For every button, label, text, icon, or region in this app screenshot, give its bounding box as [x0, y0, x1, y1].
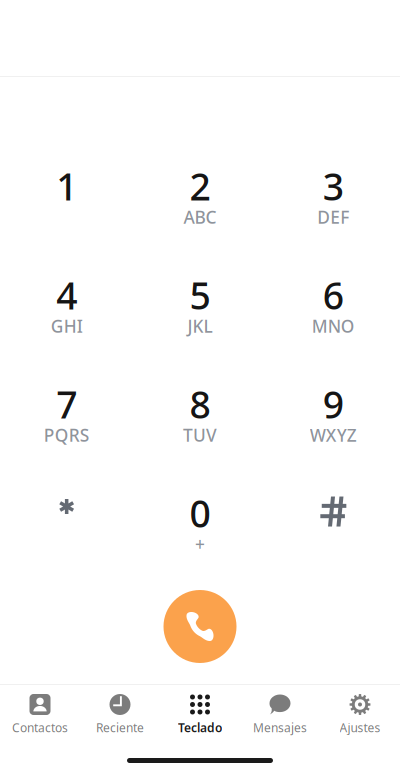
button[interactable]: Ajustes	[320, 685, 400, 738]
button[interactable]: Mensajes	[240, 685, 320, 738]
button[interactable]: Call	[163, 590, 236, 663]
button[interactable]: 2	[133, 168, 267, 224]
button[interactable]: 3	[267, 168, 400, 224]
staticText: 4	[56, 270, 77, 320]
button[interactable]: 8	[133, 386, 267, 442]
button[interactable]: star	[0, 495, 133, 551]
staticText: 6	[323, 270, 344, 320]
staticText: TUV	[183, 423, 217, 446]
staticText: Mensajes	[253, 719, 307, 735]
staticText: 0	[189, 488, 210, 538]
button[interactable]: 9	[267, 386, 400, 442]
staticText: MNO	[312, 314, 355, 337]
staticText: 5	[189, 270, 210, 320]
staticText: +	[195, 532, 205, 555]
staticText: PQRS	[44, 423, 90, 446]
staticText: DEF	[317, 205, 349, 228]
button[interactable]: 0	[133, 495, 267, 551]
button[interactable]: 5	[133, 277, 267, 333]
staticText: 9	[323, 379, 344, 429]
staticText: 2	[189, 161, 210, 211]
staticText: 7	[56, 379, 77, 429]
staticText: 8	[189, 379, 210, 429]
button[interactable]: 6	[267, 277, 400, 333]
staticText: WXYZ	[310, 423, 357, 446]
button[interactable]: Contactos	[0, 685, 80, 738]
button[interactable]: 7	[0, 386, 133, 442]
staticText: ABC	[183, 205, 216, 228]
staticText: Contactos	[12, 719, 68, 735]
button[interactable]: Reciente	[80, 685, 160, 738]
staticText: 3	[323, 161, 344, 211]
staticText: Ajustes	[339, 719, 380, 735]
button[interactable]: 4	[0, 277, 133, 333]
staticText: JKL	[187, 314, 212, 337]
staticText: GHI	[51, 314, 83, 337]
staticText: Reciente	[96, 719, 144, 735]
button[interactable]: pound	[267, 495, 400, 551]
button[interactable]: Teclado	[160, 685, 240, 738]
button[interactable]: 1	[0, 168, 133, 224]
staticText: Teclado	[178, 719, 222, 735]
staticText: 1	[56, 161, 77, 211]
